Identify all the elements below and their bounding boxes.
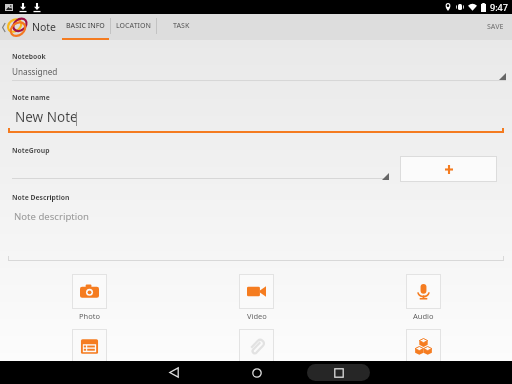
button[interactable]: Video (173, 274, 340, 321)
staticText: Video (247, 311, 267, 321)
button[interactable]: LOCATION (111, 14, 156, 40)
button[interactable]: BASIC INFO (61, 14, 110, 40)
button[interactable]: Back (0, 14, 8, 40)
staticText: New Note (15, 108, 78, 126)
button[interactable]: SAVE (479, 14, 512, 40)
staticText: NoteGroup (12, 146, 50, 155)
staticText: SAVE (487, 22, 504, 32)
staticText: BASIC INFO (66, 21, 105, 31)
staticText: Photo (79, 311, 100, 321)
staticText: Notebook (12, 52, 46, 61)
staticText: 9:47 (490, 1, 508, 13)
button[interactable]: Back (132, 361, 215, 384)
staticText: Note Description (12, 193, 70, 202)
staticText: Audio (413, 311, 434, 321)
staticText: Unassigned (12, 66, 58, 77)
button[interactable]: Text note (5, 329, 173, 364)
button[interactable]: Add note group (400, 156, 497, 182)
button[interactable]: Attachment (173, 329, 340, 364)
staticText: LOCATION (116, 21, 151, 31)
button[interactable]: Photo (5, 274, 173, 321)
staticText: TASK (173, 21, 190, 31)
staticText: Note (32, 20, 57, 34)
button[interactable]: TASK (157, 14, 205, 40)
staticText: Note description (14, 210, 89, 223)
button[interactable]: Unassigned (0, 63, 512, 79)
button[interactable]: Audio (340, 274, 507, 321)
staticText: Note name (12, 93, 50, 102)
button[interactable]: 3D model (340, 329, 507, 364)
button[interactable]: Home (215, 361, 298, 384)
button[interactable]: Recent apps (307, 364, 370, 381)
